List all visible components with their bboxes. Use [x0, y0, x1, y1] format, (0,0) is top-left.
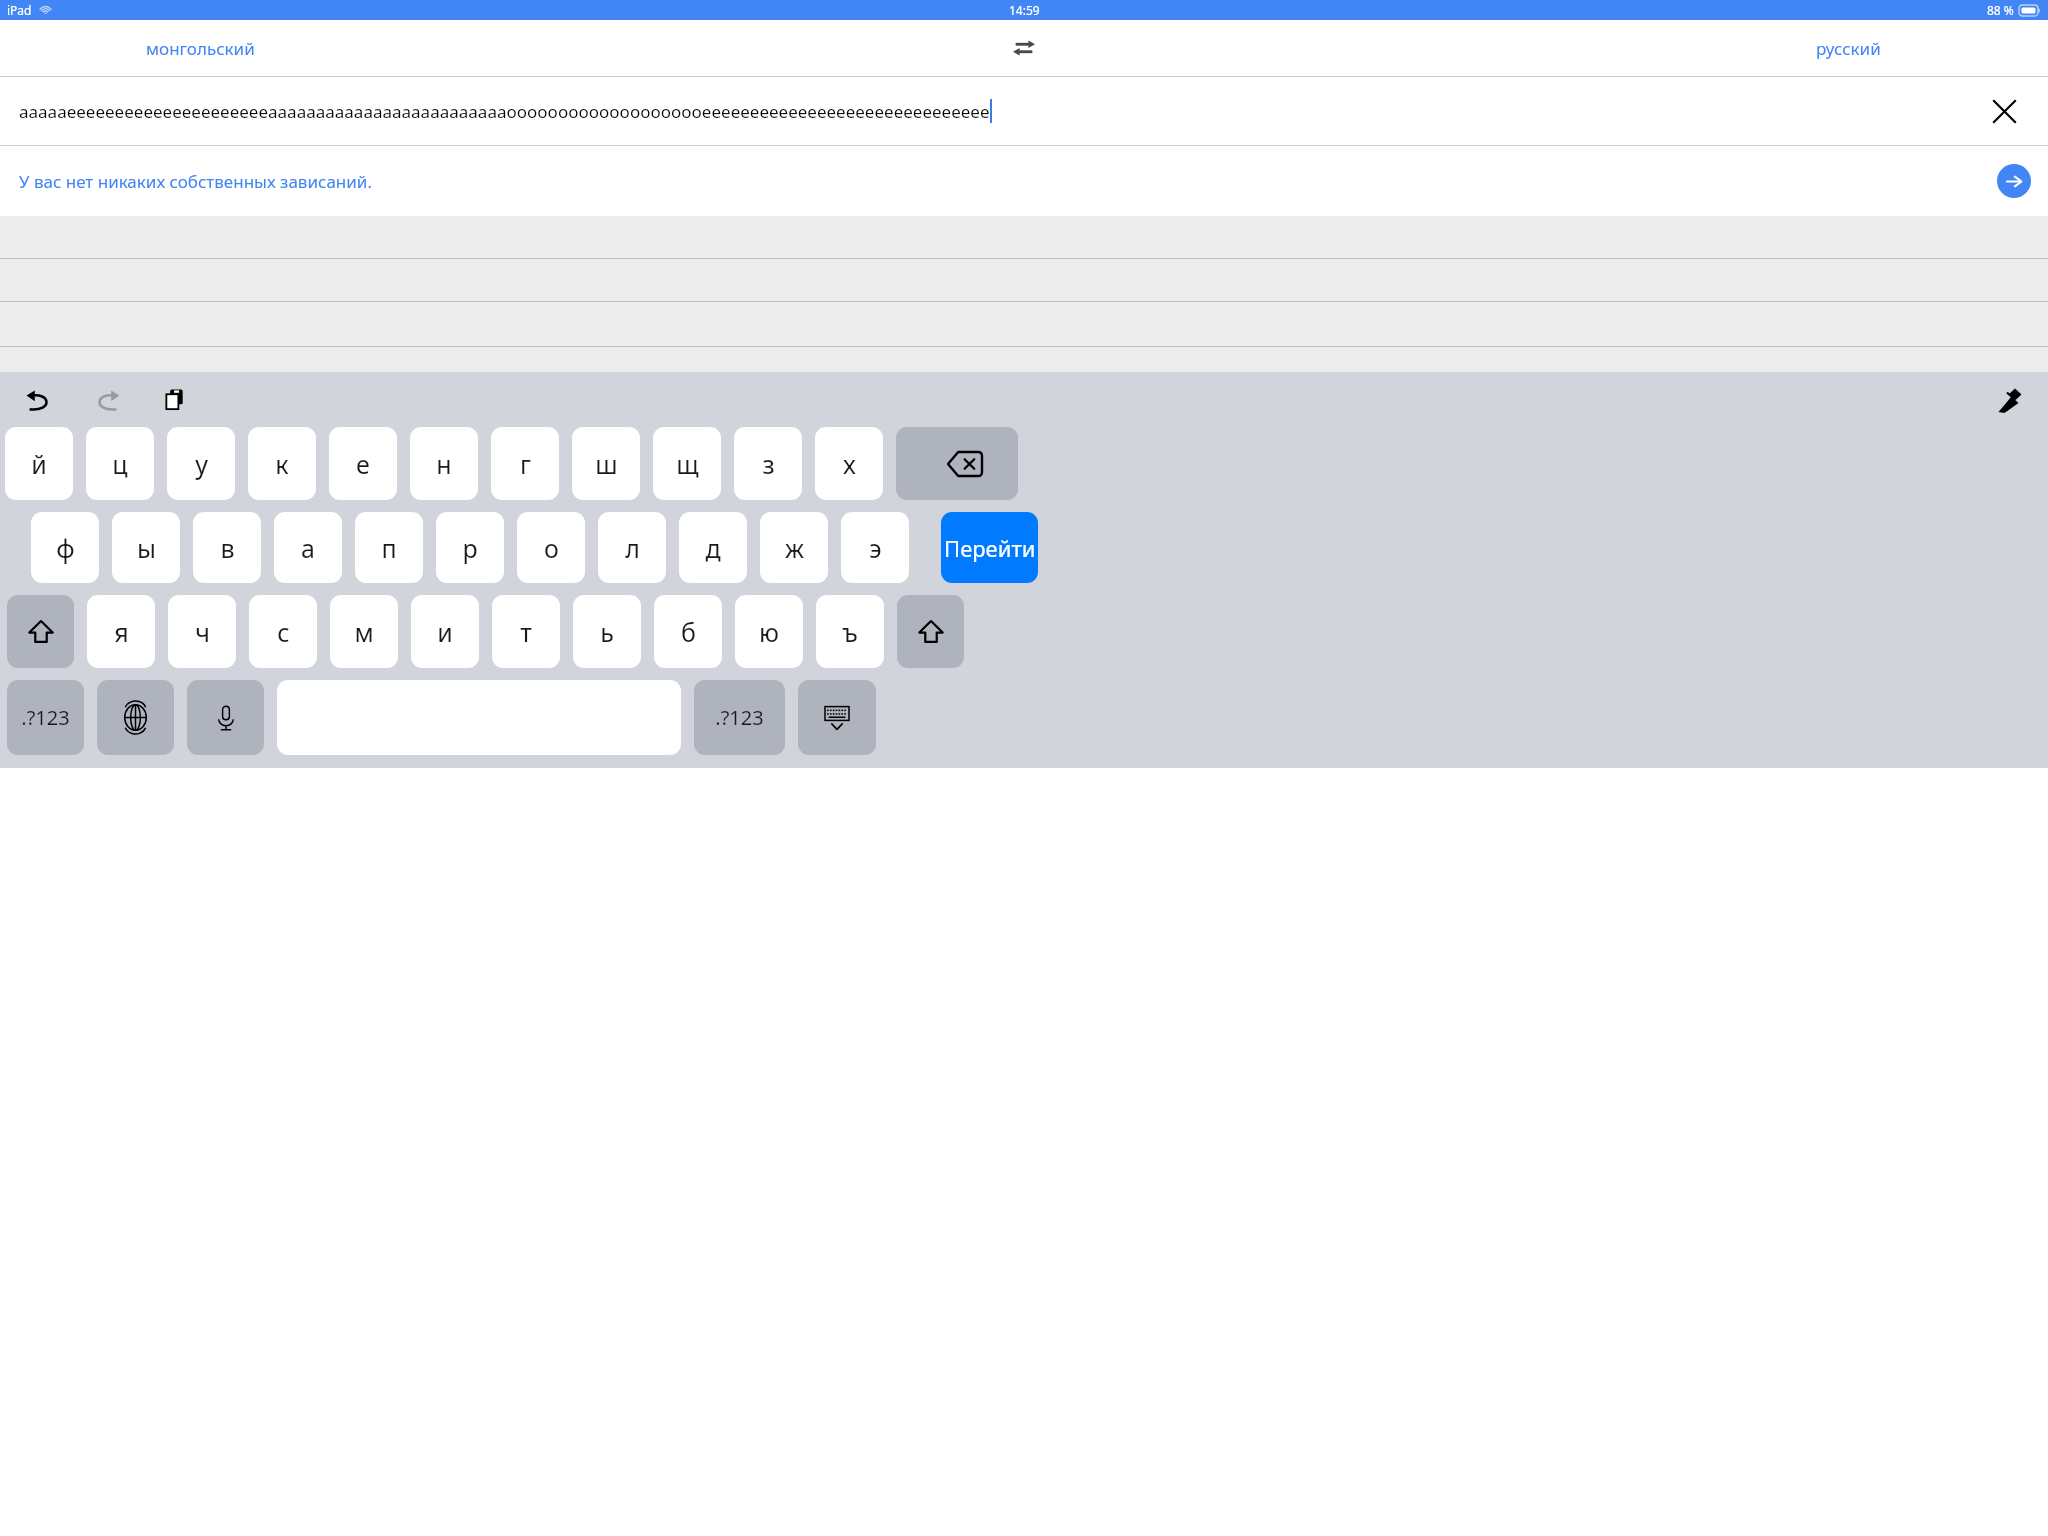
button[interactable]: Dictation [187, 680, 264, 755]
button[interactable]: д [679, 512, 747, 583]
button[interactable]: .?123 [7, 680, 84, 755]
staticText: ч [195, 615, 210, 649]
button[interactable]: ш [572, 427, 640, 500]
button[interactable]: щ [653, 427, 721, 500]
button[interactable]: ч [168, 595, 236, 668]
button[interactable]: й [5, 427, 73, 500]
button[interactable]: б [654, 595, 722, 668]
staticText: ш [595, 447, 618, 481]
staticText: aaaaaeeeeeeeeeeeeeeeeeeeeeaaaaaaaaaaaaaa… [19, 100, 990, 123]
staticText: с [277, 615, 290, 649]
staticText: т [520, 615, 532, 649]
staticText: iPad [7, 2, 32, 18]
button[interactable]: а [274, 512, 342, 583]
button[interactable]: ж [760, 512, 828, 583]
staticText: э [869, 531, 882, 565]
button[interactable]: к [248, 427, 316, 500]
button[interactable]: ъ [816, 595, 884, 668]
button[interactable]: н [410, 427, 478, 500]
button[interactable]: монгольский [0, 20, 400, 76]
button[interactable]: Hide keyboard [798, 680, 876, 755]
button[interactable]: Paste [152, 377, 198, 423]
button[interactable]: э [841, 512, 909, 583]
button[interactable]: ь [573, 595, 641, 668]
button[interactable]: с [249, 595, 317, 668]
staticText: .?123 [715, 704, 764, 731]
staticText: ъ [842, 615, 858, 649]
staticText: .?123 [21, 704, 70, 731]
button[interactable]: Translate [1997, 164, 2031, 198]
staticText: х [843, 447, 856, 481]
button[interactable]: Redo [84, 377, 130, 423]
button[interactable]: я [87, 595, 155, 668]
staticText: е [356, 447, 370, 481]
staticText: я [114, 615, 129, 649]
button[interactable]: т [492, 595, 560, 668]
staticText: б [681, 615, 696, 649]
staticText: й [31, 447, 47, 481]
staticText: 88 % [1987, 2, 2014, 18]
button[interactable]: е [329, 427, 397, 500]
button[interactable]: г [491, 427, 559, 500]
staticText: у [195, 447, 208, 481]
button[interactable]: х [815, 427, 883, 500]
staticText: У вас нет никаких собственных зависаний. [19, 170, 372, 193]
staticText: в [220, 531, 235, 565]
button[interactable]: о [517, 512, 585, 583]
staticText: н [436, 447, 452, 481]
staticText: щ [676, 447, 699, 481]
button[interactable]: з [734, 427, 802, 500]
button[interactable]: Перейти [941, 512, 1038, 583]
button[interactable]: Undo [16, 377, 62, 423]
staticText: монгольский [146, 37, 255, 60]
button[interactable]: Shift [7, 595, 74, 668]
staticText: ж [785, 531, 804, 565]
button[interactable]: ф [31, 512, 99, 583]
staticText: ц [112, 447, 128, 481]
button[interactable]: Swap languages [996, 20, 1052, 76]
button[interactable]: Change keyboard [97, 680, 174, 755]
staticText: 14:59 [1009, 2, 1040, 18]
staticText: г [520, 447, 531, 481]
button[interactable]: ы [112, 512, 180, 583]
staticText: з [762, 447, 775, 481]
button[interactable]: р [436, 512, 504, 583]
button[interactable]: п [355, 512, 423, 583]
staticText: ю [759, 615, 779, 649]
button[interactable]: м [330, 595, 398, 668]
button[interactable]: и [411, 595, 479, 668]
button[interactable]: в [193, 512, 261, 583]
staticText: о [544, 531, 559, 565]
staticText: ф [56, 531, 75, 565]
staticText: л [625, 531, 640, 565]
staticText: п [381, 531, 397, 565]
staticText: к [275, 447, 289, 481]
staticText: м [354, 615, 374, 649]
button[interactable]: у [167, 427, 235, 500]
button[interactable]: .?123 [694, 680, 785, 755]
button[interactable]: л [598, 512, 666, 583]
button[interactable]: Markup [1986, 377, 2032, 423]
staticText: р [462, 531, 478, 565]
staticText: а [301, 531, 315, 565]
staticText: и [437, 615, 453, 649]
staticText: ы [137, 531, 156, 565]
button[interactable]: ю [735, 595, 803, 668]
button[interactable]: Shift [897, 595, 964, 668]
staticText: Перейти [944, 533, 1036, 563]
staticText: д [705, 531, 721, 565]
staticText: русский [1816, 37, 1881, 60]
button[interactable]: ц [86, 427, 154, 500]
button[interactable]: Backspace [896, 427, 1018, 500]
staticText: ь [600, 615, 614, 649]
button[interactable]: Clear text [1982, 89, 2026, 133]
button[interactable]: русский [1648, 20, 2048, 76]
